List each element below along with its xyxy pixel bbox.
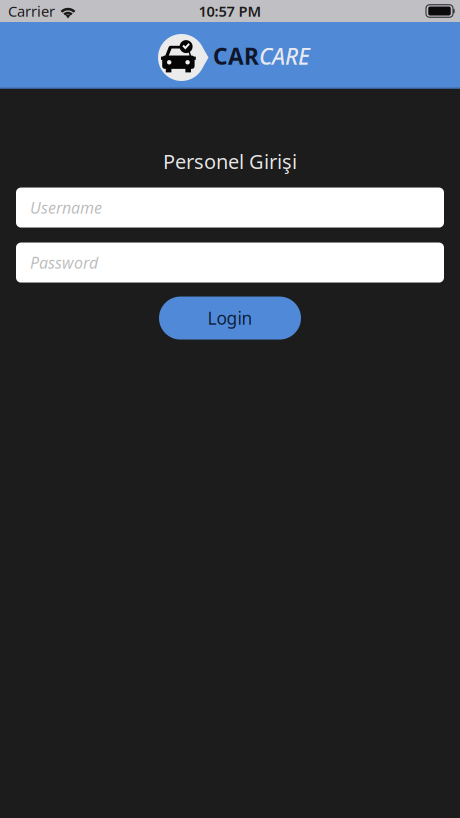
staticText: Personel Girişi	[163, 148, 297, 175]
staticText: CARE	[259, 41, 310, 71]
staticText: Login	[207, 307, 252, 330]
staticText: Password	[30, 252, 98, 273]
staticText: CAR	[213, 41, 259, 71]
button[interactable]: Username	[16, 188, 444, 228]
staticText: Carrier	[8, 1, 55, 21]
button[interactable]: Login	[159, 297, 301, 340]
button[interactable]: Password	[16, 243, 444, 283]
staticText: 10:57 PM	[198, 1, 261, 21]
staticText: Username	[30, 197, 102, 218]
